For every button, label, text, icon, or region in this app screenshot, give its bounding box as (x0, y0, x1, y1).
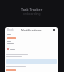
staticText: Task Tracker (21, 7, 43, 12)
staticText: onboarding (23, 12, 41, 16)
staticText: Back (7, 28, 14, 31)
staticText: Notifications (21, 28, 42, 31)
